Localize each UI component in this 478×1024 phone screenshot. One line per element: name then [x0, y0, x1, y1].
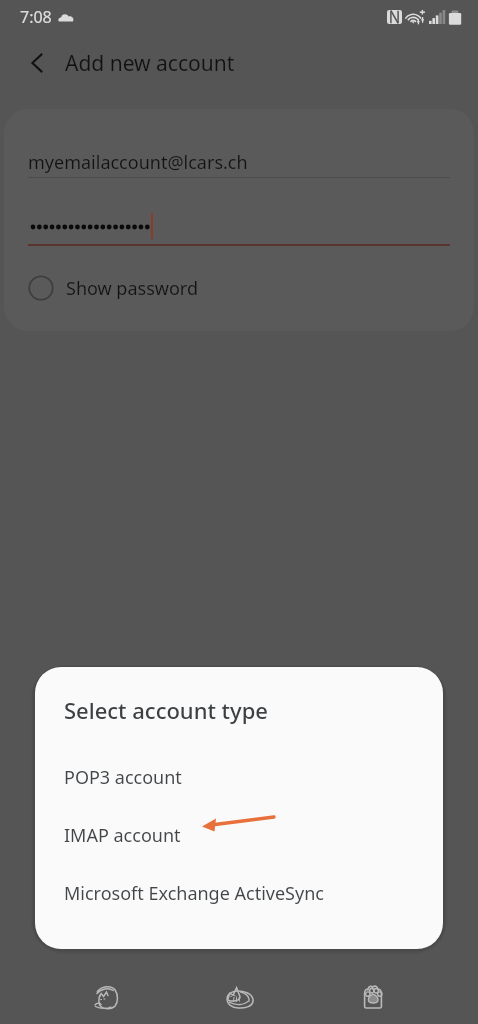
staticText: 7:08 [20, 6, 52, 28]
button[interactable]: Recent apps [327, 968, 419, 1024]
staticText: Add new account [65, 49, 235, 78]
staticText: Show password [66, 276, 198, 301]
button[interactable]: Show password [20, 264, 250, 312]
button[interactable]: Back [12, 40, 62, 86]
button[interactable]: Back [60, 968, 152, 1024]
staticText: myemailaccount@lcars.ch [28, 150, 248, 175]
staticText: IMAP account [64, 823, 181, 848]
button[interactable]: POP3 account [35, 748, 443, 806]
button[interactable]: IMAP account [35, 806, 443, 864]
staticText: POP3 account [64, 765, 182, 790]
button[interactable]: Home [193, 968, 285, 1024]
staticText: Select account type [64, 695, 268, 725]
button[interactable]: Microsoft Exchange ActiveSync [35, 864, 443, 922]
staticText: Microsoft Exchange ActiveSync [64, 881, 324, 906]
